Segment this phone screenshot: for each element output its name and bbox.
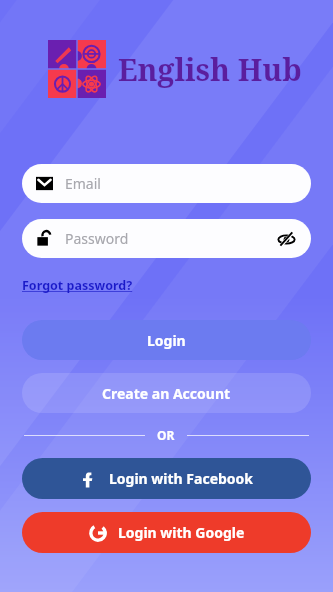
staticText: Forgot password?	[22, 277, 133, 294]
staticText: Login with Google	[118, 523, 245, 542]
button[interactable]: Login with Facebook	[22, 458, 311, 499]
button[interactable]: Password	[22, 219, 311, 258]
button[interactable]: Forgot password?	[22, 277, 133, 294]
staticText: Password	[65, 229, 275, 248]
button[interactable]: Login	[22, 320, 311, 360]
staticText: Login with Facebook	[109, 469, 254, 488]
staticText: OR	[157, 427, 175, 443]
staticText: Login	[147, 331, 186, 350]
button[interactable]: Login with Google	[22, 512, 311, 553]
staticText: Create an Account	[102, 384, 231, 403]
staticText: Email	[65, 174, 101, 193]
button[interactable]: Email	[22, 164, 311, 203]
staticText: English Hub	[118, 49, 302, 90]
button[interactable]: Show password	[275, 228, 297, 250]
button[interactable]: Create an Account	[22, 373, 311, 413]
